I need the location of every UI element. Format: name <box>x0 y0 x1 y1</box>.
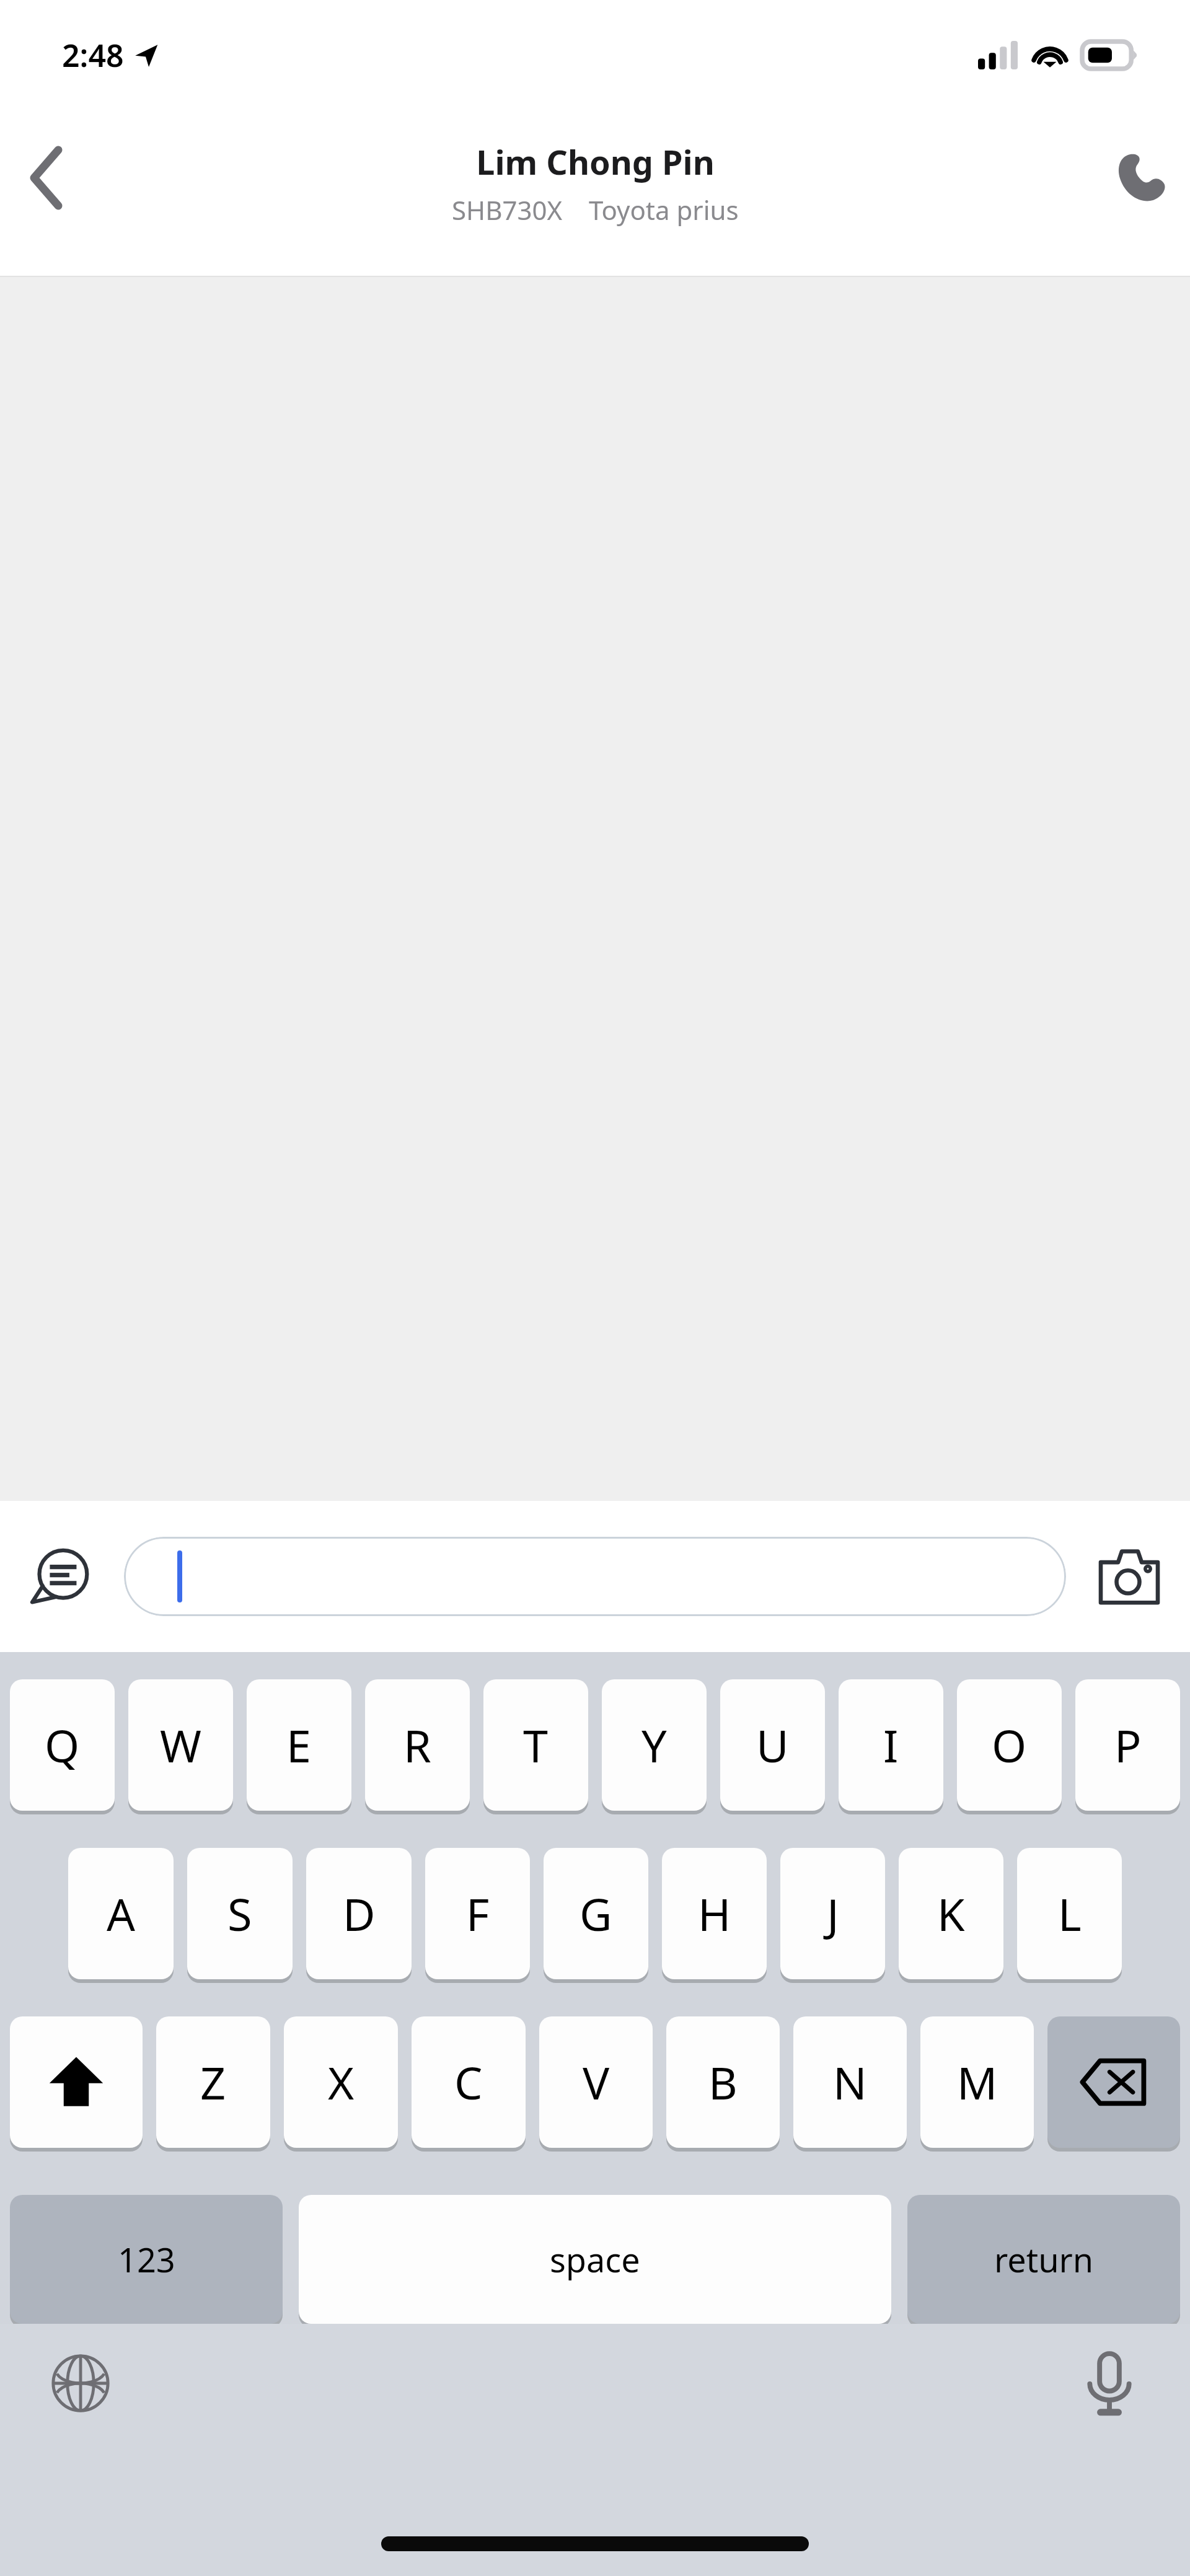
button[interactable]: H <box>662 1848 767 1979</box>
button[interactable]: Delete <box>1047 2016 1180 2148</box>
button[interactable]: X <box>284 2016 398 2148</box>
staticText: J <box>827 1883 839 1944</box>
button[interactable]: 123 <box>10 2195 283 2324</box>
button[interactable]: A <box>68 1848 174 1979</box>
button[interactable]: T <box>483 1679 588 1811</box>
button[interactable]: G <box>544 1848 648 1979</box>
staticText: C <box>454 2052 483 2112</box>
button[interactable]: B <box>666 2016 780 2148</box>
staticText: Z <box>200 2052 226 2112</box>
staticText: N <box>833 2052 867 2112</box>
button[interactable]: Q <box>10 1679 115 1811</box>
staticText: 123 <box>118 2236 175 2282</box>
button[interactable]: return <box>907 2195 1180 2324</box>
staticText: space <box>550 2236 640 2282</box>
staticText: SHB730X <box>452 192 563 227</box>
staticText: 2:48 <box>62 34 124 76</box>
button[interactable]: E <box>247 1679 351 1811</box>
button[interactable]: W <box>128 1679 233 1811</box>
button[interactable]: Z <box>156 2016 270 2148</box>
button[interactable]: N <box>793 2016 907 2148</box>
staticText: O <box>992 1715 1027 1775</box>
button[interactable]: V <box>539 2016 653 2148</box>
staticText: R <box>403 1715 431 1775</box>
button[interactable]: Call <box>1091 128 1190 227</box>
button[interactable]: P <box>1075 1679 1180 1811</box>
button[interactable]: Quick replies <box>0 1501 124 1652</box>
staticText: T <box>523 1715 549 1775</box>
staticText: Y <box>641 1715 667 1775</box>
button[interactable]: Change keyboard language <box>37 2340 124 2427</box>
button[interactable]: Y <box>602 1679 707 1811</box>
button[interactable]: M <box>920 2016 1034 2148</box>
button[interactable]: J <box>780 1848 885 1979</box>
staticText: P <box>1114 1715 1142 1775</box>
button[interactable]: Back <box>0 131 93 224</box>
button[interactable]: O <box>957 1679 1062 1811</box>
staticText: I <box>883 1715 899 1775</box>
staticText: U <box>756 1715 789 1775</box>
staticText: Toyota prius <box>589 192 739 227</box>
staticText: return <box>994 2236 1094 2282</box>
staticText: D <box>343 1883 376 1944</box>
button[interactable]: Dictate <box>1066 2340 1153 2427</box>
staticText: K <box>937 1883 965 1944</box>
staticText: G <box>580 1883 612 1944</box>
button[interactable]: F <box>425 1848 530 1979</box>
staticText: M <box>957 2052 998 2112</box>
staticText: S <box>227 1883 252 1944</box>
staticText: F <box>466 1883 490 1944</box>
staticText: X <box>328 2052 355 2112</box>
staticText: Lim Chong Pin <box>476 139 715 185</box>
button[interactable]: Shift <box>10 2016 143 2148</box>
staticText: L <box>1058 1883 1082 1944</box>
button[interactable]: L <box>1017 1848 1122 1979</box>
button[interactable]: I <box>839 1679 943 1811</box>
staticText: E <box>286 1715 312 1775</box>
staticText: H <box>698 1883 731 1944</box>
staticText: Q <box>45 1715 80 1775</box>
button[interactable]: S <box>187 1848 293 1979</box>
button[interactable]: K <box>899 1848 1003 1979</box>
button[interactable]: R <box>365 1679 470 1811</box>
button[interactable] <box>124 1537 1066 1616</box>
button[interactable]: D <box>306 1848 412 1979</box>
button[interactable]: Camera <box>1066 1501 1190 1652</box>
staticText: B <box>708 2052 738 2112</box>
button[interactable]: U <box>720 1679 825 1811</box>
staticText: V <box>583 2052 610 2112</box>
staticText: W <box>160 1715 201 1775</box>
button[interactable]: C <box>412 2016 526 2148</box>
button[interactable]: space <box>299 2195 891 2324</box>
staticText: A <box>107 1883 136 1944</box>
